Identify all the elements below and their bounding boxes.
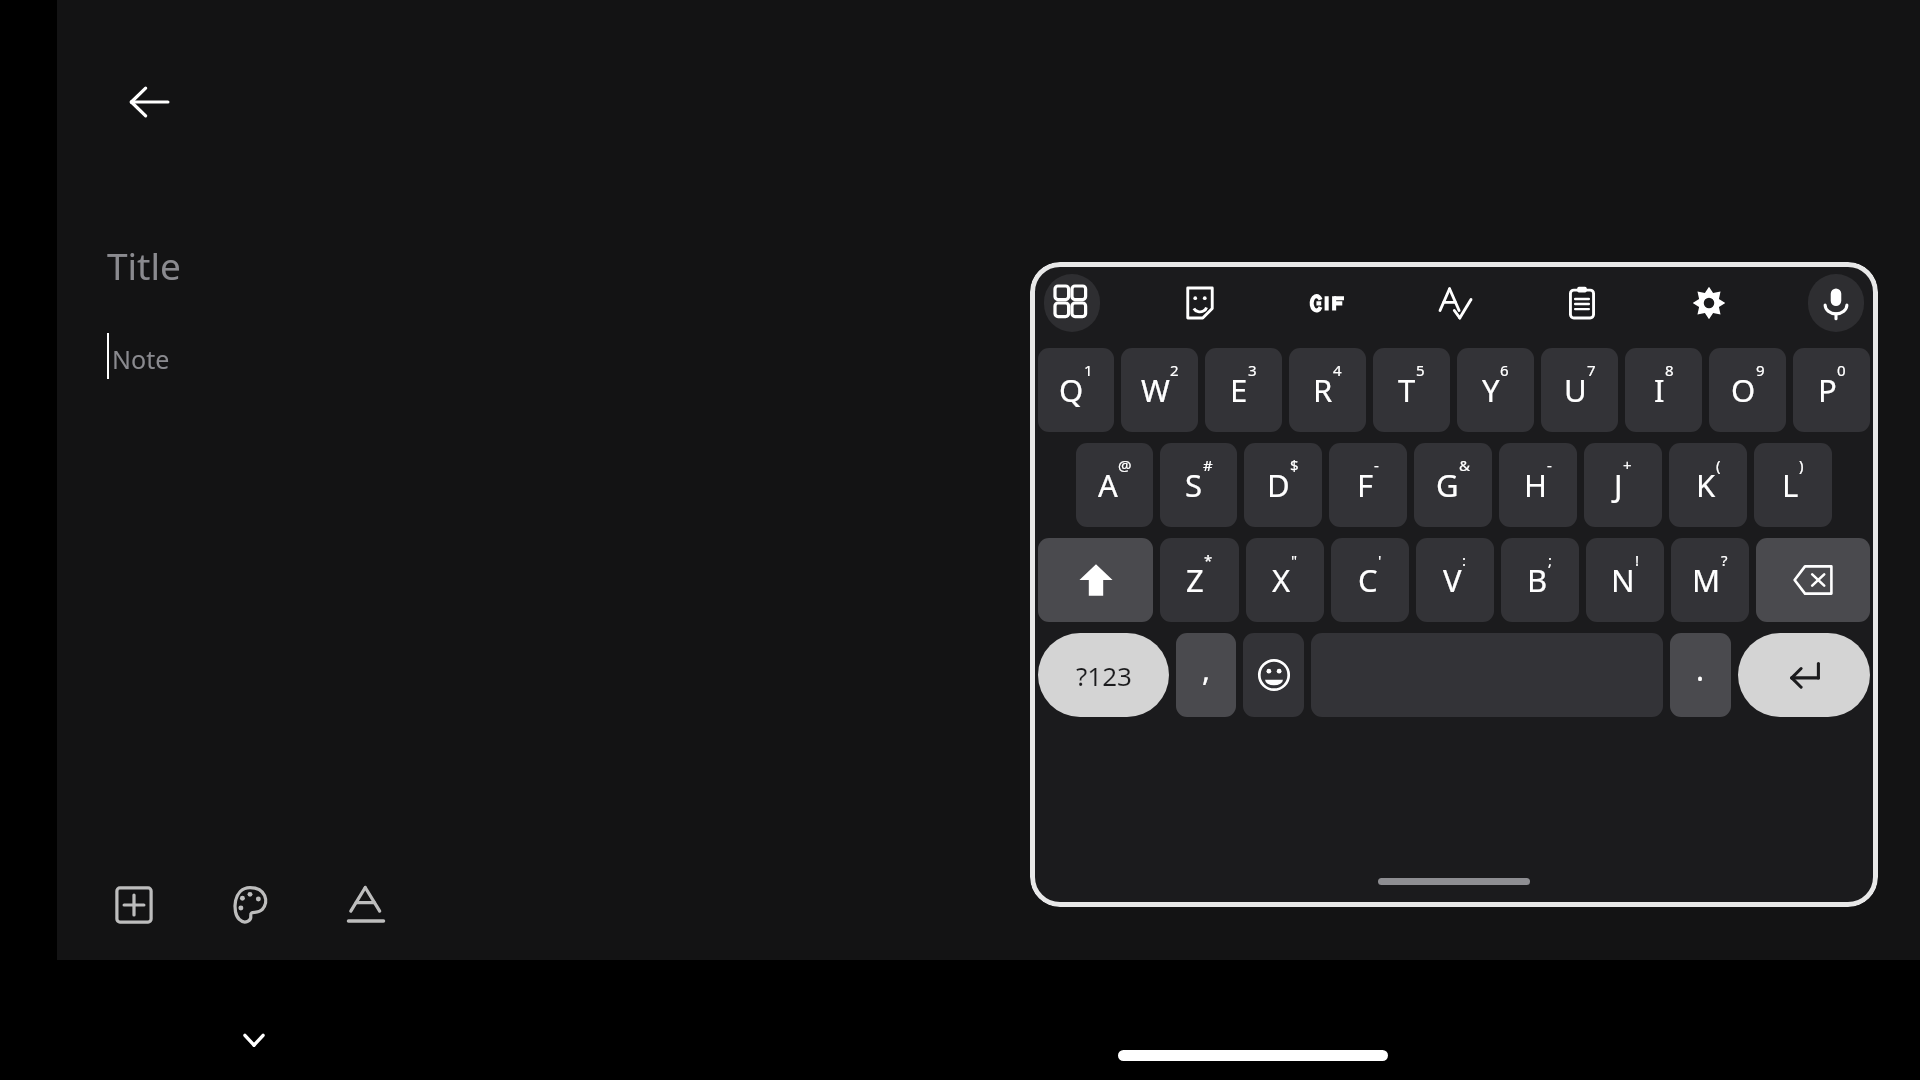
staticText: #	[1203, 455, 1213, 475]
staticText: N	[1611, 559, 1635, 601]
staticText: D	[1267, 464, 1290, 506]
button[interactable]: Y	[1457, 348, 1534, 432]
button[interactable]: Voice input	[1808, 274, 1864, 332]
staticText: Edited 10:12 AM	[1137, 880, 1289, 907]
staticText: '	[1378, 550, 1382, 570]
button[interactable]: Back	[109, 62, 189, 142]
staticText: :	[1462, 550, 1467, 570]
staticText: Y	[1482, 369, 1500, 411]
staticText: I	[1654, 369, 1665, 411]
staticText: M	[1692, 559, 1721, 601]
button[interactable]: D	[1244, 443, 1322, 527]
button[interactable]: Backspace	[1756, 538, 1870, 622]
staticText: .	[1696, 649, 1705, 690]
button[interactable]: A	[1076, 443, 1153, 527]
button[interactable]: M	[1671, 538, 1749, 622]
staticText: &	[1459, 455, 1470, 475]
staticText: F	[1357, 464, 1374, 506]
button[interactable]: Clipboard grid	[1044, 274, 1100, 332]
staticText: (	[1716, 455, 1721, 475]
staticText: B	[1527, 559, 1548, 601]
button[interactable]: F	[1329, 443, 1407, 527]
staticText: 3	[1248, 360, 1257, 380]
staticText: ?123	[1076, 658, 1132, 693]
staticText: $	[1290, 455, 1299, 475]
button[interactable]: Clipboard	[1554, 274, 1610, 332]
staticText: "	[1291, 550, 1298, 570]
staticText: C	[1358, 559, 1378, 601]
button[interactable]: Emoji	[1243, 633, 1304, 717]
button[interactable]: H	[1499, 443, 1577, 527]
staticText: J	[1614, 464, 1623, 506]
staticText: *	[1204, 550, 1213, 570]
button[interactable]: R	[1289, 348, 1366, 432]
staticText: L	[1782, 464, 1799, 506]
button[interactable]: Text formatting	[329, 868, 403, 942]
button[interactable]: Add attachment	[97, 868, 171, 942]
button[interactable]: P	[1793, 348, 1870, 432]
staticText: T	[1398, 369, 1416, 411]
staticText: O	[1731, 369, 1756, 411]
staticText: !	[1635, 550, 1640, 570]
staticText: R	[1313, 369, 1333, 411]
button[interactable]: C	[1331, 538, 1409, 622]
staticText: 9	[1756, 360, 1765, 380]
button[interactable]: L	[1754, 443, 1832, 527]
staticText: S	[1185, 464, 1203, 506]
staticText: 8	[1665, 360, 1674, 380]
staticText: Note	[112, 342, 170, 376]
staticText: 5	[1416, 360, 1425, 380]
staticText: -	[1547, 455, 1552, 475]
staticText: ?	[1721, 550, 1728, 570]
staticText: K	[1696, 464, 1716, 506]
button[interactable]: J	[1584, 443, 1662, 527]
staticText: V	[1443, 559, 1462, 601]
staticText: 7	[1587, 360, 1596, 380]
staticText: ;	[1548, 550, 1553, 570]
staticText: Title	[107, 240, 181, 290]
staticText: +	[1623, 455, 1632, 475]
button[interactable]: Change colour	[213, 868, 287, 942]
button[interactable]: E	[1205, 348, 1282, 432]
button[interactable]: Hide keyboard	[222, 1008, 286, 1072]
button[interactable]: S	[1160, 443, 1237, 527]
button[interactable]: X	[1246, 538, 1324, 622]
staticText: P	[1818, 369, 1837, 411]
button[interactable]: V	[1416, 538, 1494, 622]
staticText: A	[1098, 464, 1118, 506]
staticText: Z	[1186, 559, 1204, 601]
staticText: E	[1230, 369, 1248, 411]
staticText: ,	[1202, 649, 1211, 690]
staticText: 6	[1500, 360, 1509, 380]
button[interactable]: GIF	[1300, 274, 1356, 332]
button[interactable]: ,	[1176, 633, 1236, 717]
button[interactable]: G	[1414, 443, 1492, 527]
button[interactable]: Shift	[1038, 538, 1153, 622]
staticText: U	[1564, 369, 1587, 411]
staticText: -	[1374, 455, 1379, 475]
button[interactable]: I	[1625, 348, 1702, 432]
button[interactable]: ?123	[1038, 633, 1169, 717]
button[interactable]: Spell check	[1427, 274, 1483, 332]
button[interactable]: Stickers	[1172, 274, 1228, 332]
staticText: @	[1118, 455, 1132, 475]
button[interactable]: Z	[1160, 538, 1239, 622]
staticText: H	[1524, 464, 1547, 506]
button[interactable]: Q	[1038, 348, 1114, 432]
staticText: W	[1141, 369, 1170, 411]
button[interactable]: N	[1586, 538, 1664, 622]
staticText: 1	[1084, 360, 1093, 380]
button[interactable]: B	[1501, 538, 1579, 622]
button[interactable]: .	[1670, 633, 1731, 717]
button[interactable]: W	[1121, 348, 1198, 432]
button[interactable]: T	[1373, 348, 1450, 432]
button[interactable]: K	[1669, 443, 1747, 527]
button[interactable]: O	[1709, 348, 1786, 432]
staticText: 4	[1333, 360, 1342, 380]
staticText: 0	[1837, 360, 1846, 380]
button[interactable]: U	[1541, 348, 1618, 432]
button[interactable]: Settings	[1681, 274, 1737, 332]
button[interactable]: Enter	[1738, 633, 1870, 717]
staticText: G	[1436, 464, 1459, 506]
